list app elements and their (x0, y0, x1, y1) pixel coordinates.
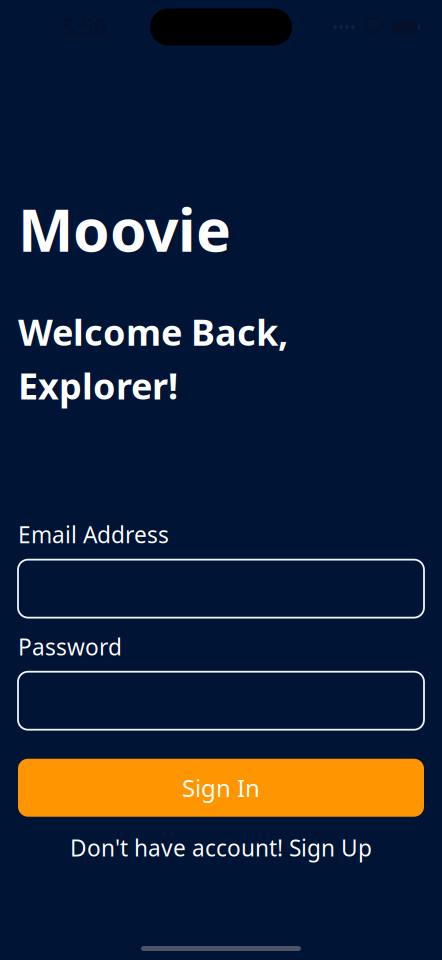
staticText: Password (18, 632, 122, 662)
staticText: Moovie (18, 190, 231, 268)
button[interactable]: Sign In (18, 759, 424, 817)
button[interactable]: Don't have account! Sign Up (18, 831, 424, 865)
staticText: Explorer! (18, 362, 178, 409)
staticText: Welcome Back, (18, 308, 288, 356)
staticText: 5:50 (62, 12, 107, 42)
staticText: Don't have account! Sign Up (70, 833, 372, 863)
staticText: Sign In (182, 772, 260, 804)
staticText: Email Address (18, 519, 169, 550)
